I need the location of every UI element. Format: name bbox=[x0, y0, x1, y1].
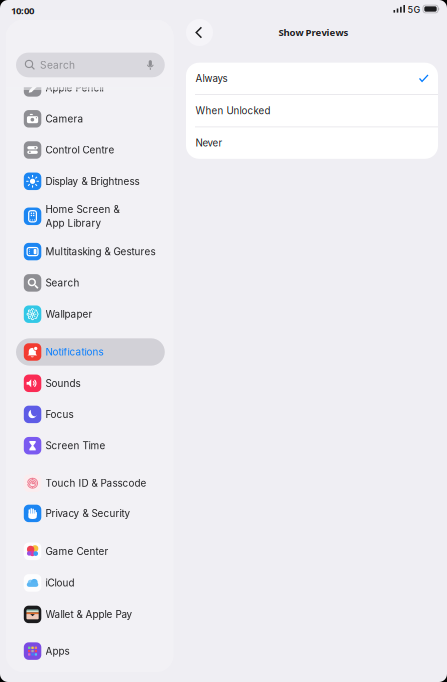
staticText: When Unlocked bbox=[195, 105, 270, 117]
staticText: Wallpaper bbox=[45, 308, 92, 320]
staticText: 10:00 bbox=[11, 4, 34, 17]
button[interactable]: Wallpaper bbox=[16, 300, 165, 328]
staticText: Always bbox=[195, 73, 227, 84]
button[interactable]: Focus bbox=[16, 401, 165, 428]
staticText: Screen Time bbox=[45, 440, 105, 452]
staticText: Multitasking & Gestures bbox=[45, 246, 155, 257]
staticText: Display & Brightness bbox=[45, 175, 139, 187]
button[interactable]: Privacy & Security bbox=[16, 500, 165, 527]
button[interactable]: Control Centre bbox=[16, 136, 165, 164]
button[interactable]: Camera bbox=[16, 105, 165, 132]
button[interactable]: Notifications bbox=[16, 338, 165, 366]
button[interactable]: Touch ID & Passcode bbox=[16, 469, 165, 497]
staticText: Search bbox=[40, 59, 75, 71]
button[interactable]: Wallet & Apple Pay bbox=[16, 601, 165, 628]
staticText: Wallet & Apple Pay bbox=[45, 608, 132, 620]
staticText: 5G bbox=[407, 4, 420, 15]
button[interactable]: Apps bbox=[16, 637, 165, 665]
button[interactable]: Search bbox=[16, 269, 165, 297]
staticText: Privacy & Security bbox=[45, 507, 130, 519]
staticText: Apple Pencil bbox=[45, 82, 103, 94]
staticText: Game Center bbox=[45, 545, 108, 557]
staticText: Search bbox=[45, 277, 79, 289]
staticText: Notifications bbox=[45, 346, 103, 358]
button[interactable]: Game Center bbox=[16, 538, 165, 565]
staticText: Never bbox=[195, 137, 222, 149]
staticText: iCloud bbox=[45, 577, 74, 589]
staticText: Control Centre bbox=[45, 144, 114, 156]
button[interactable]: Display & Brightness bbox=[16, 168, 165, 195]
button[interactable]: Never bbox=[186, 127, 438, 159]
staticText: Touch ID & Passcode bbox=[45, 477, 146, 489]
button[interactable]: When Unlocked bbox=[186, 95, 438, 126]
staticText: Focus bbox=[45, 408, 73, 420]
button[interactable]: iCloud bbox=[16, 569, 165, 597]
button[interactable]: Back bbox=[186, 19, 213, 46]
button[interactable]: Always bbox=[186, 63, 438, 94]
button[interactable]: Sounds bbox=[16, 370, 165, 397]
staticText: Camera bbox=[45, 113, 83, 125]
staticText: Home Screen & bbox=[45, 203, 119, 215]
button[interactable]: Screen Time bbox=[16, 432, 165, 459]
button[interactable]: Home Screen & bbox=[16, 199, 165, 233]
staticText: Apps bbox=[45, 645, 69, 657]
staticText: Show Previews bbox=[278, 26, 348, 39]
staticText: Sounds bbox=[45, 377, 80, 389]
button[interactable]: Apple Pencil bbox=[16, 74, 165, 102]
staticText: App Library bbox=[45, 217, 101, 229]
button[interactable]: Multitasking & Gestures bbox=[16, 238, 165, 265]
